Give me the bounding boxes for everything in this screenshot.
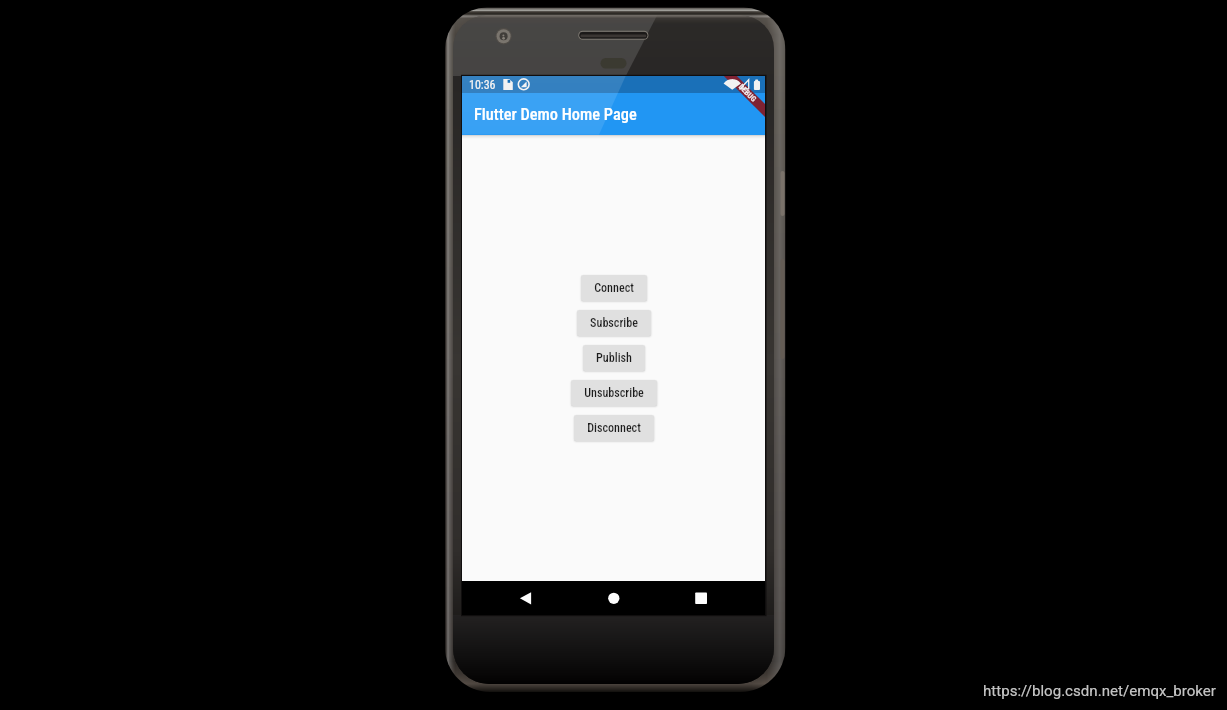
- button[interactable]: Recents: [671, 581, 731, 615]
- staticText: Flutter Demo Home Page: [474, 105, 637, 124]
- button[interactable]: Flutter Demo Home Page: [462, 93, 765, 135]
- staticText: Disconnect: [587, 421, 641, 435]
- staticText: Connect: [594, 281, 634, 295]
- staticText: https://blog.csdn.net/emqx_broker: [983, 682, 1216, 700]
- button[interactable]: Home: [584, 581, 644, 615]
- button[interactable]: Unsubscribe: [571, 380, 657, 406]
- button[interactable]: Publish: [583, 345, 645, 371]
- staticText: Unsubscribe: [584, 386, 644, 400]
- staticText: 10:36: [469, 78, 496, 92]
- staticText: Subscribe: [590, 316, 638, 330]
- button[interactable]: Back: [496, 581, 556, 615]
- button[interactable]: Disconnect: [574, 415, 654, 441]
- button[interactable]: Connect: [581, 275, 647, 301]
- staticText: Publish: [596, 351, 632, 365]
- button[interactable]: Subscribe: [577, 310, 651, 336]
